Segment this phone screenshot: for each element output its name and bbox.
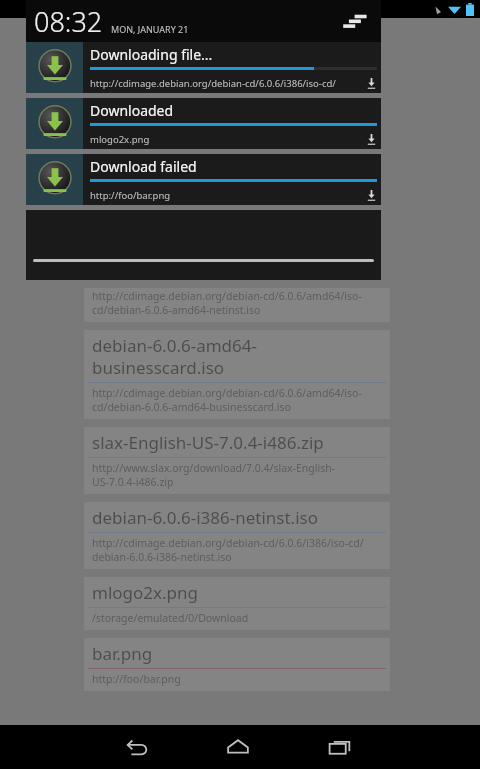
button[interactable]: Back: [110, 725, 162, 769]
staticText: http://cdimage.debian.org/debian-cd/6.0.…: [92, 289, 362, 317]
button[interactable]: bar.png: [84, 638, 390, 691]
staticText: http://foo/bar.png: [92, 672, 181, 686]
staticText: debian-6.0.6-i386-netinst.iso: [92, 506, 318, 529]
staticText: http://foo/bar.png: [90, 189, 361, 202]
staticText: bar.png: [92, 642, 153, 665]
button[interactable]: Clear all notifications: [339, 6, 369, 36]
staticText: mlogo2x.png: [90, 133, 361, 146]
staticText: /storage/emulated/0/Download: [92, 611, 249, 625]
button[interactable]: Downloaded: [26, 98, 381, 149]
button[interactable]: Home: [212, 725, 264, 769]
button[interactable]: Download failed: [26, 154, 381, 205]
staticText: http://cdimage.debian.org/debian-cd/6.0.…: [92, 536, 364, 564]
button[interactable]: slax-English-US-7.0.4-i486.zip: [84, 427, 390, 494]
staticText: mlogo2x.png: [92, 581, 198, 604]
button[interactable]: Downloading file...: [26, 42, 381, 93]
button[interactable]: mlogo2x.png: [84, 577, 390, 630]
button[interactable]: debian-6.0.6-amd64- businesscard.iso: [84, 330, 390, 419]
staticText: Downloaded: [90, 101, 174, 120]
button[interactable]: debian-6.0.6-i386-netinst.iso: [84, 502, 390, 569]
staticText: debian-6.0.6-amd64- businesscard.iso: [92, 334, 257, 379]
button[interactable]: Recent apps: [314, 725, 366, 769]
staticText: 08:32: [34, 3, 103, 40]
staticText: http://cdimage.debian.org/debian-cd/6.0.…: [90, 77, 361, 90]
staticText: http://cdimage.debian.org/debian-cd/6.0.…: [92, 386, 362, 414]
staticText: http://www.slax.org/download/7.0.4/slax-…: [92, 461, 336, 489]
staticText: slax-English-US-7.0.4-i486.zip: [92, 431, 324, 454]
staticText: MON, JANUARY 21: [111, 23, 189, 35]
staticText: Downloading file...: [90, 45, 213, 64]
staticText: Download failed: [90, 157, 197, 176]
